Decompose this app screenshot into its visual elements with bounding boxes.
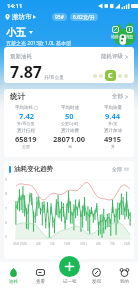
button[interactable]: 平均油量 xyxy=(91,105,134,126)
staticText: 累计油费 xyxy=(61,128,79,134)
button[interactable]: 油耗 xyxy=(0,265,27,287)
staticText: 6.62元/升 xyxy=(73,14,95,21)
staticText: 平均时速 xyxy=(61,105,79,111)
staticText: 油耗变化趋势 xyxy=(14,165,53,173)
staticText: 全部 xyxy=(112,93,123,100)
staticText: 7.87 xyxy=(10,61,42,83)
staticText: 95# xyxy=(55,14,64,21)
staticText: 公里 xyxy=(22,144,30,149)
button[interactable]: 查看 xyxy=(27,265,54,287)
staticText: 28071.00 xyxy=(53,134,86,144)
staticText: 小五 xyxy=(6,26,26,39)
staticText: 4/8 xyxy=(36,242,41,246)
staticText: 平均油量 xyxy=(104,105,122,111)
staticText: 全部 xyxy=(112,166,122,172)
staticText: 能耗评级 xyxy=(101,53,123,60)
staticText: 查看 xyxy=(36,279,45,285)
staticText: 升/次 xyxy=(108,121,118,126)
button[interactable]: 累计加油 xyxy=(91,128,134,149)
staticText: 7 xyxy=(5,206,8,211)
staticText: 消息 xyxy=(125,34,133,39)
staticText: C xyxy=(108,71,113,81)
staticText: 油价 xyxy=(111,34,119,39)
button[interactable]: 油价 xyxy=(111,26,119,39)
button[interactable]: 能耗评级 xyxy=(101,53,128,60)
staticText: 7.42 xyxy=(19,111,34,121)
staticText: 升 xyxy=(111,144,115,149)
button[interactable]: 记一笔 xyxy=(59,256,80,285)
staticText: 公里/小时 xyxy=(61,121,79,126)
staticText: 升/百公里 xyxy=(44,74,64,80)
staticText: 2021 xyxy=(80,242,87,246)
button[interactable]: 平均油耗 xyxy=(4,105,48,126)
staticText: 65819 xyxy=(15,134,37,144)
staticText: 6 xyxy=(5,220,8,225)
staticText: 8 xyxy=(5,191,8,196)
staticText: 升/百公里 xyxy=(17,121,35,126)
staticText: 累计行程 xyxy=(17,128,35,134)
button[interactable]: 全部 xyxy=(112,166,129,172)
staticText: 油耗 xyxy=(9,279,18,285)
button[interactable]: 6.62元/升 xyxy=(70,13,98,21)
staticText: 累计加油 xyxy=(104,128,122,134)
staticText: 05/8 2020 xyxy=(13,242,27,246)
button[interactable]: 消息 xyxy=(125,26,133,39)
button[interactable]: 切换城市 xyxy=(5,13,36,21)
button[interactable]: 95# xyxy=(52,13,67,21)
button[interactable]: 发现 xyxy=(82,265,110,287)
staticText: 元 xyxy=(68,144,72,149)
staticText: 10/8 xyxy=(124,242,131,246)
staticText: 50 xyxy=(65,111,74,121)
staticText: 7/8 xyxy=(50,242,55,246)
staticText: 5 xyxy=(5,234,8,239)
button[interactable]: 切换车辆 xyxy=(6,26,33,39)
staticText: 14:11 xyxy=(7,2,23,10)
staticText: 4/8 xyxy=(96,242,101,246)
button[interactable]: 全部 xyxy=(112,93,128,100)
staticText: 发现 xyxy=(92,279,101,285)
staticText: 10/8 xyxy=(64,242,71,246)
staticText: 7/8 xyxy=(110,242,115,246)
staticText: 9.44 xyxy=(105,111,120,121)
button[interactable]: 平均时速 xyxy=(48,105,91,126)
staticText: 4915 xyxy=(104,134,122,144)
staticText: 潍坊市 xyxy=(12,13,32,21)
button[interactable]: 累计油费 xyxy=(48,128,91,149)
staticText: 平均油耗 xyxy=(15,105,33,111)
button[interactable]: 累计行程 xyxy=(4,128,48,149)
staticText: 统计 xyxy=(10,92,25,101)
button[interactable]: 我的 xyxy=(110,265,138,287)
staticText: 我的 xyxy=(120,279,129,285)
staticText: 9 xyxy=(5,177,8,182)
button[interactable]: 最新油耗 xyxy=(4,47,134,83)
staticText: 记一笔 xyxy=(63,279,77,285)
staticText: 五菱之光 2013款 1.0L 基本型 xyxy=(6,40,72,47)
staticText: 最新油耗 xyxy=(10,53,32,60)
